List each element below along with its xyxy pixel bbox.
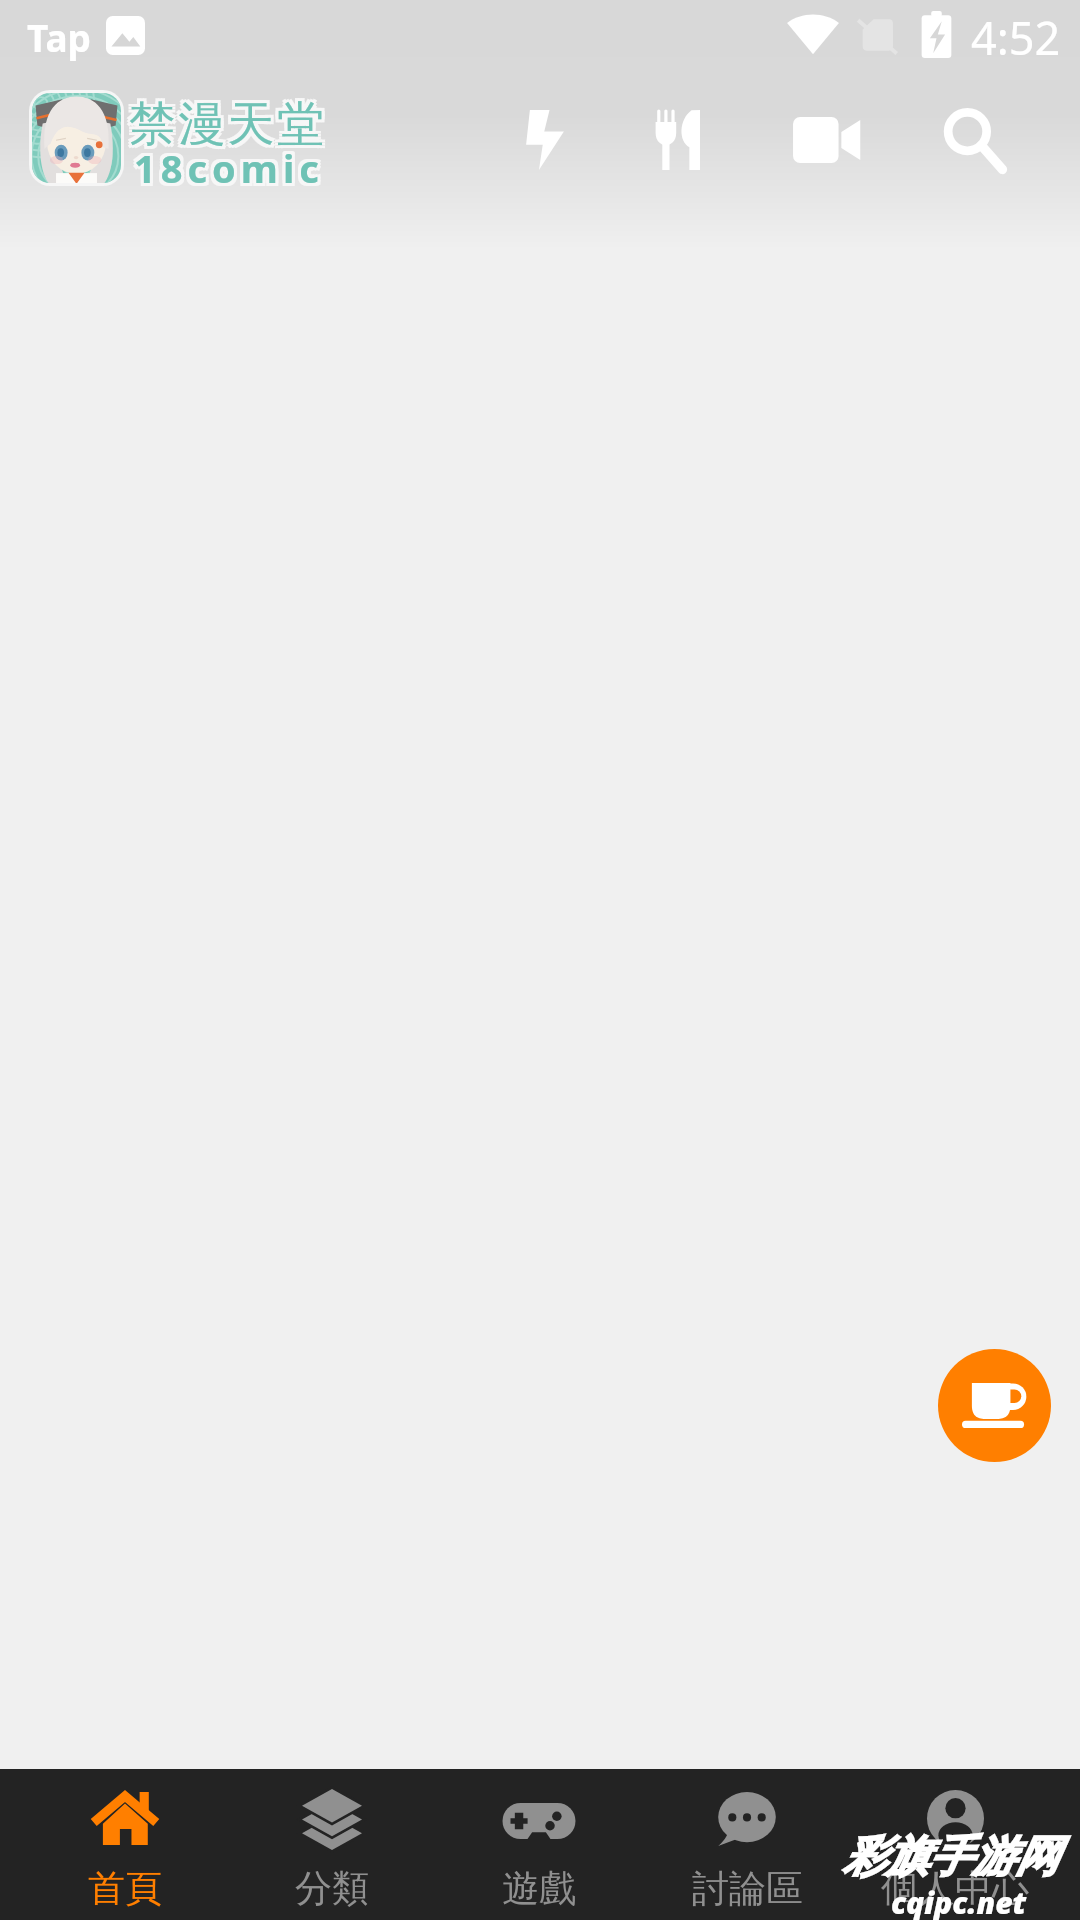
button[interactable]: 個人中心 [851, 1769, 1059, 1920]
staticText: 4:52 [971, 7, 1061, 68]
staticText: cqipc.net [891, 1882, 1027, 1920]
staticText: 禁漫天堂 [126, 98, 324, 157]
staticText: 18comic [137, 145, 327, 197]
staticText: 18comic [137, 139, 327, 191]
staticText: 18comic [134, 142, 324, 194]
button[interactable]: Search [925, 92, 1021, 188]
button[interactable]: 分類 [228, 1769, 435, 1920]
staticText: 禁漫天堂 [129, 92, 327, 151]
button[interactable]: 討論區 [643, 1769, 851, 1920]
button[interactable]: 遊戲 [435, 1769, 643, 1920]
staticText: 18comic [134, 145, 324, 197]
staticText: 分類 [295, 1865, 369, 1912]
staticText: 18comic [131, 145, 321, 197]
staticText: 首頁 [88, 1865, 162, 1912]
button[interactable]: 禁漫天堂 [128, 90, 326, 204]
staticText: 18comic [134, 139, 324, 191]
button[interactable]: Coffee [938, 1349, 1051, 1462]
staticText: Tap [27, 12, 91, 62]
staticText: 18comic [131, 142, 321, 194]
staticText: 遊戲 [502, 1865, 576, 1912]
button[interactable]: 首頁 [21, 1769, 228, 1920]
button[interactable]: Food [630, 92, 726, 188]
staticText: 禁漫天堂 [132, 98, 330, 157]
staticText: 禁漫天堂 [132, 95, 330, 154]
staticText: 禁漫天堂 [126, 92, 324, 151]
staticText: 個人中心 [881, 1865, 1029, 1912]
staticText: 18comic [131, 139, 321, 191]
staticText: 討論區 [692, 1865, 803, 1912]
button[interactable]: Flash [497, 92, 593, 188]
staticText: 禁漫天堂 [129, 95, 327, 154]
staticText: 18comic [137, 142, 327, 194]
staticText: 禁漫天堂 [129, 98, 327, 157]
button[interactable]: Video [779, 92, 875, 188]
button[interactable]: App logo [32, 93, 121, 183]
staticText: 禁漫天堂 [126, 95, 324, 154]
staticText: 禁漫天堂 [132, 92, 330, 151]
staticText: 彩旗手游网 [843, 1830, 1058, 1884]
